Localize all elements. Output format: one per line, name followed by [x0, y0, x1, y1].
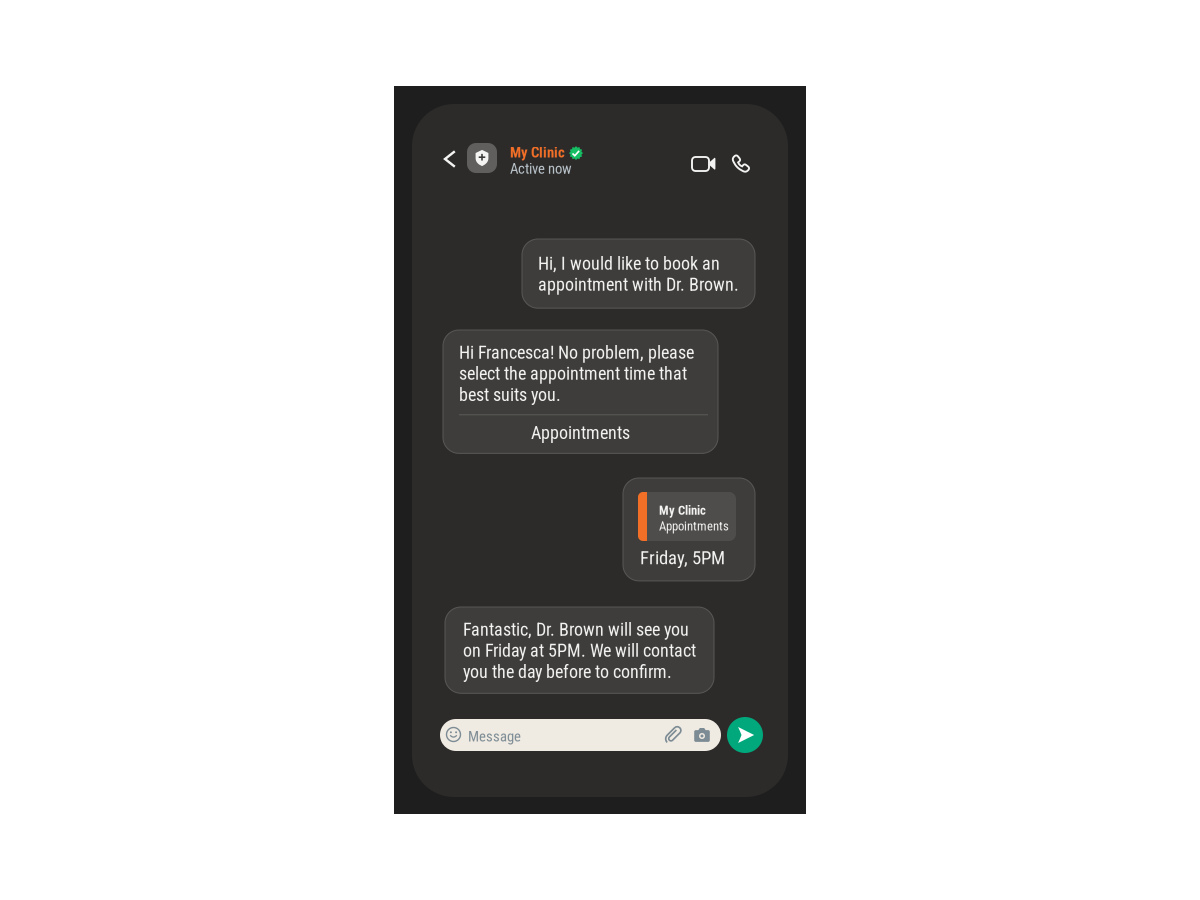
button[interactable]: Back [435, 142, 465, 176]
button[interactable]: Appointments [443, 415, 718, 453]
button[interactable]: Voice call [728, 149, 754, 179]
button[interactable]: Message [440, 719, 721, 751]
staticText: Message [468, 728, 521, 745]
button[interactable]: My Clinic profile [467, 143, 497, 173]
staticText: My Clinic [659, 503, 706, 518]
staticText: Active now [510, 160, 572, 177]
button[interactable]: My Clinic [638, 492, 736, 541]
staticText: Appointments [531, 422, 630, 443]
staticText: Hi Francesca! No problem, please select … [459, 342, 694, 405]
staticText: Hi, I would like to book an appointment … [538, 253, 739, 295]
button[interactable]: My Clinic [510, 144, 583, 178]
staticText: My Clinic [510, 144, 565, 161]
staticText: Friday, 5PM [640, 547, 725, 569]
staticText: Appointments [659, 519, 729, 534]
staticText: Fantastic, Dr. Brown will see you on Fri… [463, 619, 696, 682]
button[interactable]: Send [727, 717, 763, 753]
button[interactable]: Video call [689, 149, 719, 179]
